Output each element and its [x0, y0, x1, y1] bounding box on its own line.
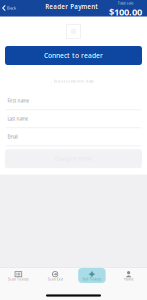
staticText: Scan Exit	[48, 277, 63, 282]
button[interactable]: Back	[0, 0, 19, 16]
button[interactable]: Sell Tickets	[73, 268, 110, 283]
staticText: Total sale	[117, 0, 133, 6]
button[interactable]: Profile	[110, 268, 147, 283]
staticText: Last name	[7, 116, 27, 122]
staticText: Email	[7, 134, 17, 140]
staticText: $100.00	[109, 6, 142, 18]
button[interactable]: Scan Tickets	[0, 268, 37, 283]
staticText: Scan Tickets	[8, 277, 29, 282]
staticText: Back	[7, 5, 16, 11]
staticText: Input customer data	[53, 78, 93, 84]
staticText: First name	[7, 98, 28, 104]
button[interactable]: Connect to reader	[5, 46, 142, 65]
button[interactable]: Scan Exit	[37, 268, 74, 283]
staticText: Connect to reader	[44, 51, 103, 60]
staticText: Reader Payment	[45, 2, 97, 11]
staticText: Profile	[124, 277, 134, 282]
staticText: Sell Tickets	[82, 277, 101, 282]
